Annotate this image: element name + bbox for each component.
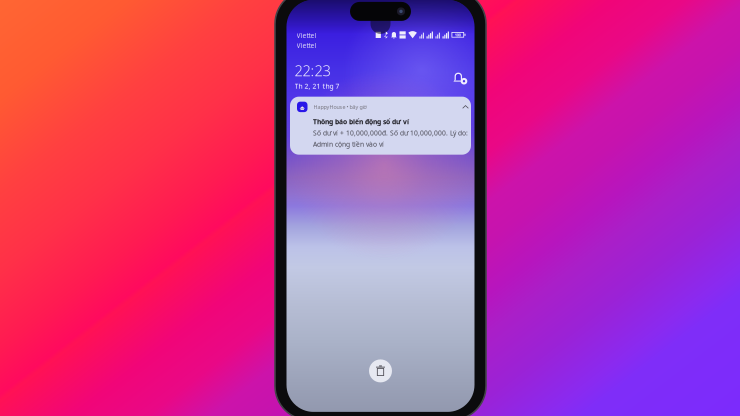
button[interactable]: Clear all notifications xyxy=(365,356,395,386)
staticText: Viettel xyxy=(296,41,316,50)
staticText: Admin cộng tiền vào ví xyxy=(313,140,384,149)
staticText: Th 2, 21 thg 7 xyxy=(294,82,339,91)
staticText: Thông báo biến động số dư ví xyxy=(313,117,409,126)
staticText: Viettel xyxy=(296,31,316,40)
staticText: HappyHouse • bây giờ xyxy=(313,103,366,110)
staticText: Số dư ví + 10,000,000đ. Số dư 10,000,000… xyxy=(313,128,468,137)
button[interactable]: Notification settings xyxy=(447,65,468,86)
button[interactable]: HappyHouse • bây giờ xyxy=(290,97,471,155)
staticText: 22:23 xyxy=(294,61,330,80)
staticText: 100 xyxy=(455,32,461,37)
